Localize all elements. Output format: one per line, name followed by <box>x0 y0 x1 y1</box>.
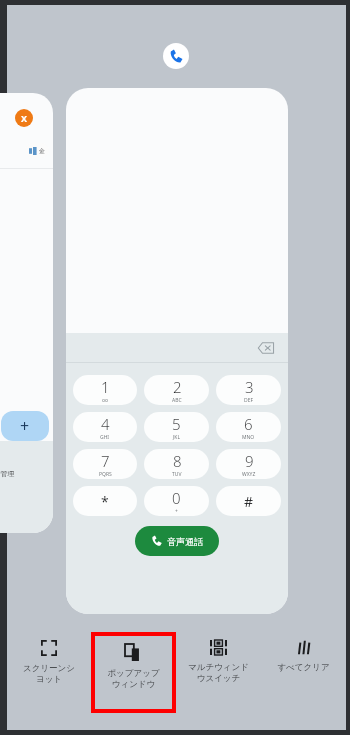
button[interactable]: 6 <box>216 412 281 442</box>
other: Clear all <box>297 640 311 655</box>
other: Popup window <box>125 644 142 661</box>
staticText: 5 <box>172 414 181 434</box>
button[interactable]: 0 <box>144 486 209 516</box>
staticText: 1 <box>101 377 110 397</box>
staticText: 9 <box>245 451 254 471</box>
staticText: 0 <box>172 488 181 508</box>
staticText: スクリーンシ ヨット <box>23 663 75 685</box>
staticText: MNO <box>242 434 255 441</box>
button[interactable]: Multi window switch <box>176 632 261 713</box>
staticText: + <box>20 415 30 437</box>
button[interactable]: 4 <box>73 412 137 442</box>
staticText: 7 <box>101 451 110 471</box>
button[interactable]: + <box>1 411 49 441</box>
staticText: ポップアップ ウィンドウ <box>107 668 160 690</box>
button[interactable]: Screenshot <box>7 632 91 713</box>
button[interactable]: * <box>73 486 137 516</box>
button[interactable]: X <box>0 93 53 533</box>
other: Multi window switch <box>210 640 227 655</box>
button[interactable]: 5 <box>144 412 209 442</box>
button[interactable]: 9 <box>216 449 281 479</box>
staticText: 4 <box>101 414 110 434</box>
staticText: と管理 <box>0 469 15 478</box>
button[interactable]: 7 <box>73 449 137 479</box>
staticText: DEF <box>244 397 254 404</box>
staticText: ABC <box>172 397 182 404</box>
staticText: # <box>244 492 254 511</box>
staticText: * <box>101 492 109 511</box>
staticText: 金 <box>39 147 45 155</box>
staticText: WXYZ <box>242 471 256 478</box>
staticText: 音声通話 <box>167 536 203 547</box>
staticText: マルチウィンド ウスイッチ <box>188 662 249 684</box>
staticText: 3 <box>245 377 254 397</box>
staticText: 8 <box>173 451 182 471</box>
staticText: すべてクリア <box>277 662 330 673</box>
button[interactable]: 2 <box>144 375 209 405</box>
staticText: X <box>21 112 28 124</box>
button[interactable]: Clear all <box>261 632 346 713</box>
staticText: 6 <box>244 414 253 434</box>
staticText: TUV <box>172 471 182 478</box>
staticText: oo <box>102 397 109 404</box>
button[interactable]: Backspace <box>254 339 278 357</box>
button[interactable]: # <box>216 486 281 516</box>
button[interactable]: 3 <box>216 375 281 405</box>
button[interactable]: Phone app <box>163 43 189 69</box>
button[interactable]: 音声通話 <box>135 526 219 556</box>
other: Screenshot <box>41 640 57 656</box>
button[interactable]: 1 <box>73 375 137 405</box>
staticText: JKL <box>173 434 181 441</box>
button[interactable]: Popup window <box>95 636 172 709</box>
staticText: GHI <box>100 434 110 441</box>
staticText: 2 <box>173 377 182 397</box>
staticText: + <box>175 508 178 515</box>
button[interactable]: Backspace <box>66 88 288 614</box>
button[interactable]: 8 <box>144 449 209 479</box>
staticText: PQRS <box>99 471 112 478</box>
